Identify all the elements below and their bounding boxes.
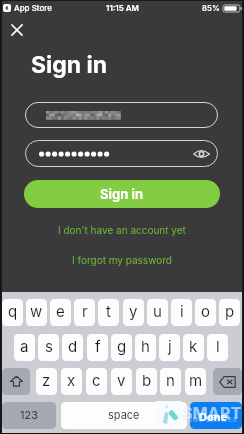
- button[interactable]: x: [61, 368, 82, 395]
- button[interactable]: [190, 402, 242, 429]
- button[interactable]: v: [111, 368, 132, 395]
- button[interactable]: t: [98, 299, 119, 326]
- button[interactable]: f: [87, 334, 108, 361]
- staticText: h: [141, 337, 150, 355]
- staticText: SMART: [182, 403, 242, 422]
- staticText: s: [45, 337, 53, 355]
- staticText: a: [20, 337, 29, 355]
- staticText: Done: [199, 410, 228, 423]
- staticText: u: [153, 302, 162, 320]
- button[interactable]: space: [61, 402, 187, 429]
- staticText: space: [108, 408, 140, 421]
- staticText: t: [106, 302, 111, 320]
- button[interactable]: z: [36, 368, 57, 395]
- staticText: 85%: [202, 3, 220, 13]
- button[interactable]: h: [135, 334, 156, 361]
- button[interactable]: k: [183, 334, 204, 361]
- button[interactable]: Show password: [192, 147, 210, 161]
- staticText: HOME DEVICES: [182, 416, 238, 424]
- button[interactable]: l: [207, 334, 228, 361]
- staticText: e: [56, 302, 65, 320]
- button[interactable]: b: [136, 368, 157, 395]
- staticText: p: [225, 302, 235, 320]
- staticText: d: [68, 337, 78, 355]
- button[interactable]: o: [195, 299, 216, 326]
- staticText: c: [92, 371, 101, 389]
- staticText: w: [30, 302, 43, 320]
- staticText: I don't have an account yet: [58, 224, 186, 236]
- button[interactable]: Sign in: [24, 180, 220, 208]
- button[interactable]: w: [26, 299, 47, 326]
- staticText: x: [67, 371, 76, 389]
- button[interactable]: a: [14, 334, 35, 361]
- button[interactable]: Backspace: [213, 368, 242, 395]
- button[interactable]: g: [111, 334, 132, 361]
- button[interactable]: r: [74, 299, 95, 326]
- button[interactable]: i: [171, 299, 192, 326]
- button[interactable]: 123: [2, 402, 56, 429]
- staticText: f: [95, 337, 101, 355]
- button[interactable]: I forgot my password: [0, 251, 244, 269]
- staticText: b: [142, 371, 152, 389]
- staticText: Sign in: [31, 51, 108, 79]
- staticText: o: [201, 302, 210, 320]
- button[interactable]: c: [86, 368, 107, 395]
- button[interactable]: j: [159, 334, 180, 361]
- staticText: j: [168, 337, 172, 355]
- staticText: 11:15 AM: [106, 3, 139, 13]
- staticText: l: [216, 337, 220, 355]
- button[interactable]: q: [2, 299, 23, 326]
- staticText: Sign in: [100, 186, 144, 202]
- button[interactable]: m: [185, 368, 206, 395]
- button[interactable]: y: [123, 299, 144, 326]
- button[interactable]: s: [38, 334, 59, 361]
- button[interactable]: d: [62, 334, 83, 361]
- staticText: App Store: [14, 3, 52, 13]
- button[interactable]: Show password: [25, 140, 218, 167]
- staticText: 123: [20, 408, 38, 421]
- staticText: y: [129, 302, 138, 320]
- staticText: z: [42, 371, 51, 389]
- staticText: q: [8, 302, 18, 320]
- button[interactable]: [25, 102, 218, 128]
- staticText: v: [117, 371, 126, 389]
- button[interactable]: p: [219, 299, 240, 326]
- staticText: k: [189, 337, 198, 355]
- staticText: I forgot my password: [72, 254, 172, 266]
- staticText: g: [117, 337, 127, 355]
- staticText: n: [166, 371, 175, 389]
- button[interactable]: Close: [6, 18, 28, 40]
- staticText: i: [180, 302, 184, 320]
- button[interactable]: u: [147, 299, 168, 326]
- button[interactable]: e: [50, 299, 71, 326]
- button[interactable]: n: [160, 368, 181, 395]
- button[interactable]: I don't have an account yet: [0, 221, 244, 239]
- staticText: m: [189, 371, 203, 389]
- staticText: r: [82, 302, 88, 320]
- button[interactable]: Shift: [2, 368, 30, 395]
